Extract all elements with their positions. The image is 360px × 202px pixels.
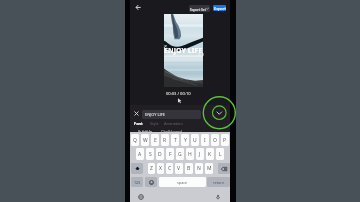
button[interactable]: Font xyxy=(134,121,143,126)
staticText: R xyxy=(163,137,167,144)
staticText: ENJOY LIFE xyxy=(164,46,203,55)
staticText: I xyxy=(204,137,206,144)
staticText: F xyxy=(169,151,172,158)
button[interactable]: M xyxy=(205,163,213,174)
button[interactable]: D xyxy=(156,148,164,160)
button[interactable]: V xyxy=(175,163,183,174)
staticText: Chalkboard xyxy=(161,129,182,134)
button[interactable]: I xyxy=(201,134,209,146)
staticText: S xyxy=(149,151,152,158)
staticText: M xyxy=(207,165,212,172)
button[interactable]: 123 xyxy=(131,177,143,187)
button[interactable]: space xyxy=(159,177,206,187)
staticText: Subtitle xyxy=(138,129,152,134)
staticText: W xyxy=(143,137,148,144)
staticText: O xyxy=(213,137,217,144)
button[interactable]: K xyxy=(206,148,214,160)
button[interactable]: B xyxy=(185,163,193,174)
button[interactable]: A xyxy=(136,148,144,160)
staticText: B xyxy=(187,165,191,172)
staticText: K xyxy=(208,151,212,158)
staticText: T xyxy=(174,137,177,144)
button[interactable]: Close text editor xyxy=(134,111,139,116)
button[interactable]: Dictate xyxy=(215,194,221,200)
staticText: 00:03 / 00:10 xyxy=(166,91,191,97)
button[interactable]: P xyxy=(221,134,229,146)
staticText: Export xyxy=(214,6,226,11)
button[interactable]: G xyxy=(176,148,184,160)
staticText: N xyxy=(197,165,201,172)
button[interactable]: Style xyxy=(150,121,159,126)
staticText: 123 xyxy=(134,180,141,185)
staticText: G xyxy=(178,151,182,158)
button[interactable]: Back xyxy=(133,2,143,12)
button[interactable]: C xyxy=(166,163,173,174)
button[interactable]: R xyxy=(161,134,169,146)
button[interactable]: Shift xyxy=(131,163,143,174)
button[interactable]: Q xyxy=(131,134,139,146)
button[interactable]: ENJOY LIFE xyxy=(142,110,201,119)
button[interactable]: J xyxy=(196,148,204,160)
button[interactable]: U xyxy=(191,134,199,146)
staticText: return xyxy=(213,180,225,185)
button[interactable]: E xyxy=(151,134,159,146)
button[interactable]: X xyxy=(157,163,164,174)
staticText: L xyxy=(219,151,222,158)
staticText: V xyxy=(177,165,181,172)
button[interactable]: Z xyxy=(148,163,155,174)
staticText: C xyxy=(168,165,172,172)
button[interactable]: H xyxy=(186,148,194,160)
button[interactable]: Export Set xyxy=(189,5,210,12)
staticText: J xyxy=(199,151,201,158)
button[interactable]: return xyxy=(207,177,230,187)
button[interactable]: O xyxy=(211,134,219,146)
staticText: ENJOY LIFE xyxy=(145,112,165,117)
button[interactable]: Backspace xyxy=(218,163,230,174)
button[interactable]: Emoji xyxy=(145,177,157,187)
button[interactable]: T xyxy=(171,134,179,146)
button[interactable]: Change keyboard language xyxy=(138,194,144,200)
staticText: A xyxy=(138,151,142,158)
button[interactable]: Y xyxy=(181,134,189,146)
button[interactable]: S xyxy=(146,148,154,160)
staticText: U xyxy=(193,137,197,144)
staticText: P xyxy=(223,137,227,144)
button[interactable]: N xyxy=(195,163,203,174)
button[interactable]: W xyxy=(141,134,149,146)
button[interactable]: L xyxy=(216,148,224,160)
staticText: E xyxy=(154,137,157,144)
staticText: D xyxy=(158,151,162,158)
button[interactable]: Animation xyxy=(164,121,183,126)
staticText: Export Set xyxy=(190,7,206,11)
staticText: H xyxy=(188,151,192,158)
staticText: Q xyxy=(133,137,137,144)
staticText: Z xyxy=(150,165,153,172)
staticText: X xyxy=(159,165,162,172)
button[interactable]: Export xyxy=(213,5,226,11)
staticText: space xyxy=(177,180,188,185)
button[interactable]: F xyxy=(166,148,174,160)
staticText: Y xyxy=(184,137,187,144)
